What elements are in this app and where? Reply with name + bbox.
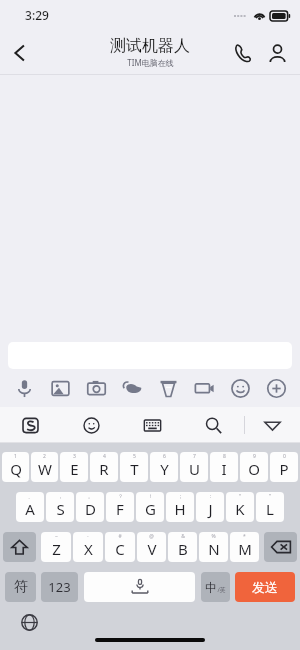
button[interactable]: ？ (106, 492, 134, 522)
staticText: 3 (73, 453, 76, 460)
button[interactable]: 符 (5, 572, 36, 602)
button[interactable]: @ (137, 532, 166, 562)
button[interactable]: More (261, 373, 291, 403)
staticText: I (221, 459, 227, 479)
button[interactable]: Voice (9, 373, 39, 403)
button[interactable]: ， (46, 492, 74, 522)
staticText: TIM电脑在线 (127, 57, 174, 68)
button[interactable]: 5 (120, 452, 148, 482)
button[interactable]: # (105, 532, 135, 562)
button[interactable]: ~ (41, 532, 71, 562)
staticText: ~ (55, 533, 58, 540)
staticText: B (178, 539, 188, 559)
button[interactable]: Back (0, 33, 40, 73)
button[interactable]: 2 (31, 452, 58, 482)
staticText: Y (160, 459, 169, 479)
staticText: J (208, 499, 213, 519)
staticText: O (248, 459, 260, 479)
staticText: G (145, 499, 156, 519)
button[interactable]: ： (196, 492, 224, 522)
staticText: 8 (223, 453, 226, 460)
staticText: 2 (43, 453, 46, 460)
button[interactable]: Backspace (264, 532, 297, 562)
button[interactable]: Sogou (0, 407, 61, 443)
staticText: 中 (205, 580, 217, 595)
button[interactable]: GIF (189, 373, 219, 403)
staticText: E (70, 459, 79, 479)
staticText: W (38, 459, 52, 479)
button[interactable]: 4 (90, 452, 118, 482)
staticText: 测试机器人 (110, 36, 190, 56)
button[interactable]: “ (226, 492, 254, 522)
staticText: · (87, 533, 89, 540)
button[interactable]: 9 (240, 452, 268, 482)
staticText: 4 (103, 453, 106, 460)
button[interactable]: 、 (16, 492, 44, 522)
button[interactable]: 。 (76, 492, 104, 522)
staticText: # (118, 533, 122, 540)
staticText: N (208, 539, 220, 559)
staticText: ； (178, 493, 183, 499)
button[interactable]: 发送 (235, 572, 295, 602)
staticText: M (238, 539, 252, 559)
staticText: F (116, 499, 124, 519)
staticText: ？ (118, 493, 123, 499)
staticText: S (56, 499, 65, 519)
staticText: 5 (133, 453, 136, 460)
button[interactable]: Space (84, 572, 195, 602)
staticText: C (115, 539, 125, 559)
button[interactable]: 1 (2, 452, 29, 482)
staticText: 符 (14, 578, 28, 596)
button[interactable]: & (168, 532, 197, 562)
staticText: 9 (253, 453, 256, 460)
button[interactable]: % (199, 532, 228, 562)
staticText: ” (269, 493, 271, 500)
staticText: X (84, 539, 93, 559)
staticText: D (85, 499, 96, 519)
staticText: P (279, 459, 289, 479)
button[interactable]: Camera (81, 373, 111, 403)
staticText: 发送 (252, 579, 278, 595)
staticText: 。 (88, 493, 93, 499)
staticText: Z (52, 539, 61, 559)
button[interactable]: Search (183, 407, 244, 443)
button[interactable]: 8 (210, 452, 238, 482)
staticText: 、 (28, 493, 33, 499)
button[interactable]: 123 (41, 572, 78, 602)
button[interactable]: 3 (60, 452, 88, 482)
button[interactable]: Change language (18, 611, 40, 633)
staticText: @ (149, 533, 154, 540)
button[interactable]: Emoji (225, 373, 255, 403)
staticText: * (243, 533, 246, 540)
staticText: A (25, 499, 35, 519)
button[interactable]: Hide keyboard (245, 407, 300, 443)
button[interactable]: Profile (260, 36, 294, 70)
button[interactable]: Album (45, 373, 75, 403)
button[interactable]: Gift (153, 373, 183, 403)
button[interactable]: ； (166, 492, 194, 522)
staticText: 0 (283, 453, 286, 460)
staticText: /英 (217, 586, 226, 594)
staticText: % (211, 533, 216, 540)
button[interactable]: Shake (117, 373, 147, 403)
button[interactable]: 中 (201, 572, 230, 602)
staticText: ， (58, 493, 63, 499)
button[interactable]: 7 (180, 452, 208, 482)
staticText: 7 (193, 453, 196, 460)
button[interactable]: ！ (136, 492, 164, 522)
staticText: ： (208, 493, 213, 499)
button[interactable]: · (73, 532, 103, 562)
button[interactable]: * (230, 532, 259, 562)
button[interactable]: Call (226, 36, 260, 70)
staticText: V (147, 539, 157, 559)
button[interactable]: Keyboard (122, 407, 183, 443)
button[interactable]: 6 (150, 452, 178, 482)
button[interactable]: ” (256, 492, 284, 522)
button[interactable]: 0 (270, 452, 298, 482)
button[interactable]: Emoji (61, 407, 122, 443)
staticText: 6 (163, 453, 166, 460)
button[interactable]: Shift (3, 532, 36, 562)
staticText: ！ (148, 493, 153, 499)
staticText: Q (10, 459, 22, 479)
